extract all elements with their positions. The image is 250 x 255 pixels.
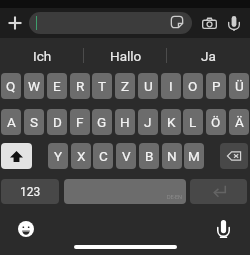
button[interactable]: K bbox=[161, 109, 181, 135]
staticText: Q bbox=[6, 78, 16, 94]
button[interactable]: Ja bbox=[167, 38, 250, 73]
button[interactable]: Microphone bbox=[212, 218, 234, 240]
button[interactable]: Y bbox=[48, 143, 68, 169]
staticText: J bbox=[144, 114, 152, 130]
button[interactable]: U bbox=[138, 73, 158, 99]
button[interactable]: 123 bbox=[1, 179, 59, 204]
staticText: Ü bbox=[235, 78, 244, 94]
staticText: T bbox=[98, 78, 107, 94]
button[interactable]: Attach bbox=[4, 12, 26, 34]
staticText: Ö bbox=[211, 114, 221, 130]
button[interactable]: H bbox=[115, 109, 135, 135]
button[interactable]: Hallo bbox=[84, 38, 167, 73]
button[interactable]: R bbox=[70, 73, 90, 99]
staticText: M bbox=[188, 148, 200, 164]
staticText: L bbox=[189, 114, 197, 130]
staticText: D bbox=[53, 114, 62, 130]
staticText: Ä bbox=[235, 114, 244, 130]
staticText: S bbox=[30, 114, 39, 130]
button[interactable]: L bbox=[183, 109, 203, 135]
staticText: V bbox=[122, 148, 131, 164]
staticText: K bbox=[167, 114, 176, 130]
button[interactable]: I bbox=[161, 73, 181, 99]
staticText: B bbox=[145, 148, 154, 164]
staticText: X bbox=[77, 148, 86, 164]
button[interactable]: F bbox=[70, 109, 90, 135]
staticText: Ja bbox=[201, 48, 216, 64]
staticText: E bbox=[53, 78, 61, 94]
button[interactable]: Ü bbox=[229, 73, 249, 99]
button[interactable]: Space bbox=[64, 179, 186, 204]
button[interactable]: C bbox=[93, 143, 113, 169]
staticText: I bbox=[169, 78, 173, 94]
button[interactable]: Ö bbox=[206, 109, 226, 135]
button[interactable]: M bbox=[184, 143, 204, 169]
button[interactable]: Stickers bbox=[171, 16, 183, 28]
button[interactable]: J bbox=[138, 109, 158, 135]
button[interactable]: Shift bbox=[1, 143, 32, 169]
staticText: G bbox=[97, 114, 107, 130]
button[interactable]: D bbox=[47, 109, 67, 135]
button[interactable]: X bbox=[71, 143, 91, 169]
staticText: 123 bbox=[20, 185, 41, 199]
staticText: O bbox=[188, 78, 198, 94]
staticText: Z bbox=[121, 78, 130, 94]
staticText: Y bbox=[54, 148, 63, 164]
staticText: F bbox=[76, 114, 84, 130]
button[interactable]: Z bbox=[115, 73, 135, 99]
staticText: U bbox=[144, 78, 153, 94]
button[interactable]: O bbox=[183, 73, 203, 99]
button[interactable]: G bbox=[92, 109, 112, 135]
staticText: DE-EN bbox=[167, 194, 182, 201]
staticText: N bbox=[167, 148, 177, 164]
button[interactable]: Backspace bbox=[220, 143, 248, 169]
button[interactable]: A bbox=[1, 109, 21, 135]
staticText: H bbox=[120, 114, 130, 130]
staticText: R bbox=[76, 78, 85, 94]
staticText: A bbox=[7, 114, 16, 130]
button[interactable]: Ä bbox=[229, 109, 249, 135]
button[interactable]: W bbox=[24, 73, 44, 99]
button[interactable]: S bbox=[24, 109, 44, 135]
button[interactable]: Ich bbox=[0, 38, 84, 73]
button[interactable]: Voice message bbox=[223, 12, 245, 34]
staticText: Hallo bbox=[110, 48, 142, 64]
button[interactable]: Stickers bbox=[29, 12, 192, 34]
button[interactable]: T bbox=[92, 73, 112, 99]
button[interactable]: Camera bbox=[198, 12, 220, 34]
button[interactable]: N bbox=[162, 143, 182, 169]
button[interactable]: Enter bbox=[190, 179, 247, 204]
staticText: Ich bbox=[33, 48, 52, 64]
button[interactable]: V bbox=[116, 143, 136, 169]
staticText: W bbox=[28, 78, 40, 94]
button[interactable]: Emoji bbox=[15, 218, 37, 240]
staticText: P bbox=[212, 78, 221, 94]
button[interactable]: P bbox=[206, 73, 226, 99]
button[interactable]: E bbox=[47, 73, 67, 99]
button[interactable]: Q bbox=[1, 73, 21, 99]
button[interactable]: B bbox=[139, 143, 159, 169]
staticText: C bbox=[99, 148, 108, 164]
